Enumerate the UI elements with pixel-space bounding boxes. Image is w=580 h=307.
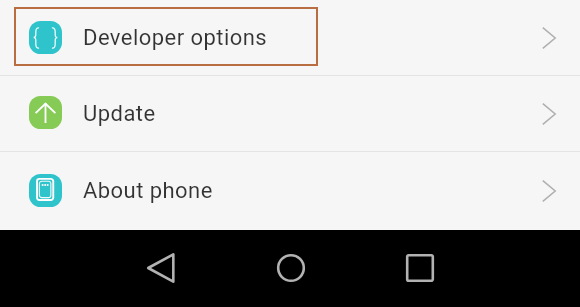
button[interactable]: About phone (0, 152, 580, 230)
button[interactable]: Back (133, 240, 189, 296)
staticText: About phone (83, 178, 213, 204)
button[interactable]: Recents (392, 240, 448, 296)
staticText: Update (83, 101, 156, 127)
staticText: Developer options (83, 25, 268, 51)
button[interactable]: Home (263, 240, 319, 296)
button[interactable]: Developer options (0, 0, 580, 75)
button[interactable]: Update (0, 76, 580, 151)
